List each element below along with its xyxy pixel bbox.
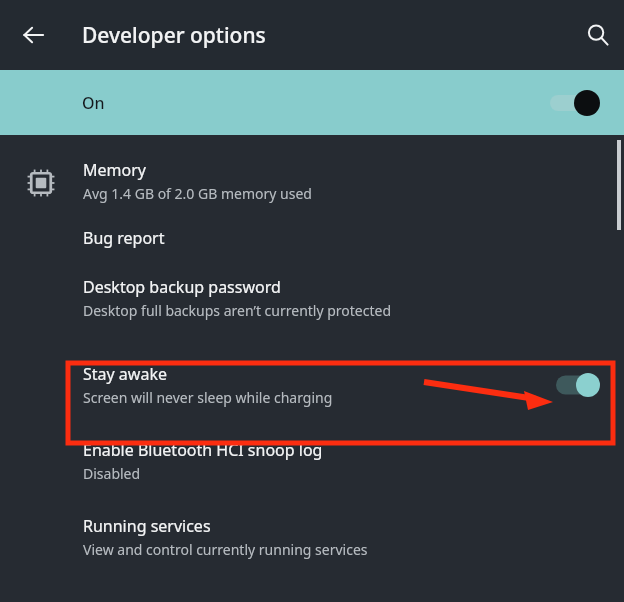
staticText: Developer options xyxy=(82,21,266,50)
staticText: Avg 1.4 GB of 2.0 GB memory used xyxy=(83,184,312,203)
staticText: On xyxy=(82,92,105,114)
button[interactable]: Enable Bluetooth HCI snoop log xyxy=(0,439,624,483)
staticText: Stay awake xyxy=(83,363,167,385)
staticText: Screen will never sleep while charging xyxy=(83,388,333,407)
button[interactable]: Bug report xyxy=(0,227,624,249)
staticText: Memory xyxy=(83,159,146,181)
button[interactable]: On xyxy=(0,70,624,135)
staticText: View and control currently running servi… xyxy=(83,540,368,559)
button[interactable]: Memory xyxy=(0,159,624,203)
button[interactable]: Search xyxy=(574,11,622,59)
button[interactable]: Back xyxy=(10,11,58,59)
staticText: Enable Bluetooth HCI snoop log xyxy=(83,439,323,461)
staticText: Desktop full backups aren’t currently pr… xyxy=(83,301,392,320)
button[interactable]: Running services xyxy=(0,515,624,559)
staticText: Desktop backup password xyxy=(83,276,281,298)
staticText: Bug report xyxy=(83,227,165,249)
button[interactable]: Desktop backup password xyxy=(0,276,624,320)
staticText: Running services xyxy=(83,515,211,537)
button[interactable]: Stay awake xyxy=(0,350,624,420)
staticText: Disabled xyxy=(83,464,141,483)
